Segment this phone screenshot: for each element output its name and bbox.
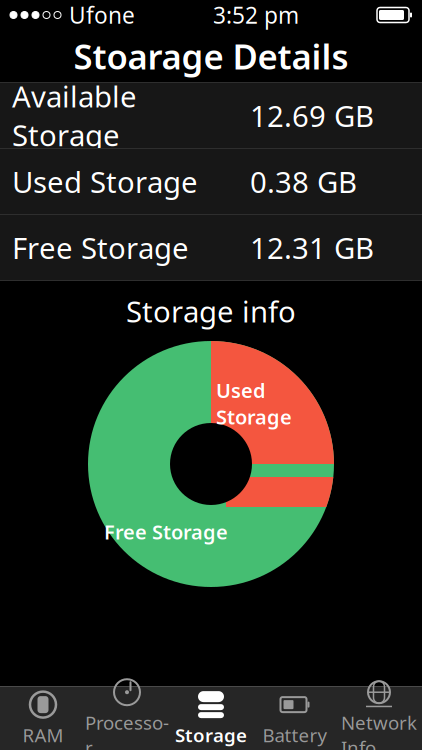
staticText: Stoarage Details	[73, 33, 348, 79]
button[interactable]: Processor	[85, 687, 169, 750]
staticText: Used Storage	[216, 377, 292, 430]
button[interactable]: Battery	[253, 687, 337, 750]
staticText: Used Storage	[12, 162, 198, 201]
staticText: Free Storage	[104, 518, 228, 545]
staticText: Processor	[85, 710, 169, 750]
staticText: 12.31 GB	[250, 228, 374, 267]
button[interactable]: Used Storage	[0, 149, 422, 214]
button[interactable]: Available Storage	[0, 83, 422, 148]
button[interactable]: Network Info	[337, 687, 421, 750]
staticText: RAM	[22, 723, 63, 747]
staticText: 3:52 pm	[213, 0, 299, 30]
staticText: 0.38 GB	[250, 162, 357, 201]
staticText: Ufone	[69, 0, 135, 30]
staticText: Network Info	[341, 710, 417, 750]
staticText: Available Storage	[12, 76, 137, 154]
staticText: Battery	[262, 723, 327, 747]
staticText: Storage	[175, 723, 247, 747]
staticText: Free Storage	[12, 228, 189, 267]
button[interactable]: RAM	[1, 687, 85, 750]
button[interactable]: Storage	[169, 687, 253, 750]
button[interactable]: Free Storage	[0, 215, 422, 280]
staticText: 12.69 GB	[250, 96, 374, 135]
staticText: Storage info	[126, 291, 296, 330]
